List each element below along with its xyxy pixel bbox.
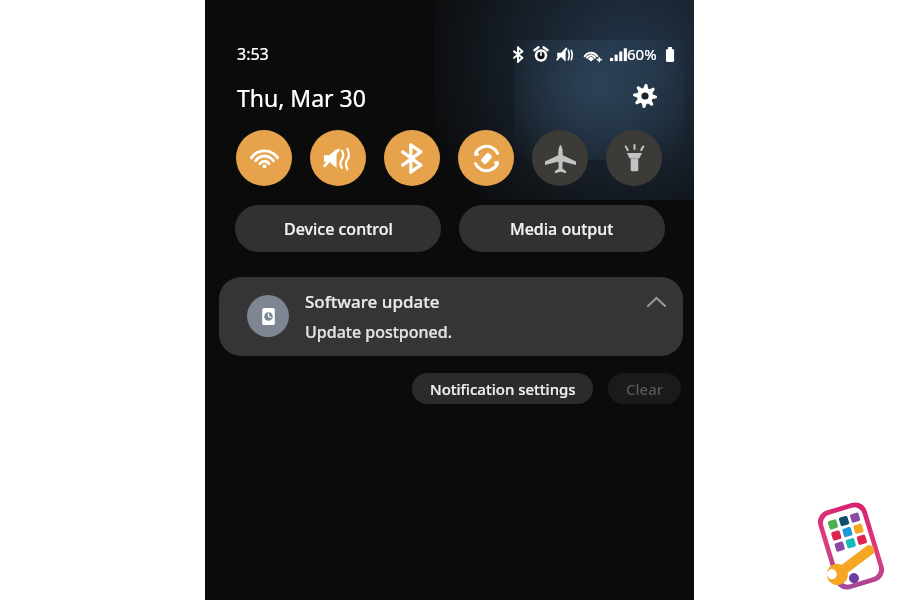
button[interactable]: Media output <box>459 205 665 252</box>
staticText: Update postponed. <box>305 321 453 343</box>
button[interactable]: Software update <box>219 277 683 356</box>
staticText: Media output <box>510 218 614 240</box>
button[interactable]: Wi-Fi <box>236 130 292 186</box>
staticText: Notification settings <box>430 379 576 399</box>
button[interactable]: Bluetooth <box>384 130 440 186</box>
button[interactable]: Settings <box>625 76 665 116</box>
staticText: 60% <box>627 44 657 64</box>
staticText: Thu, Mar 30 <box>237 82 366 113</box>
button[interactable]: Auto rotate <box>458 130 514 186</box>
staticText: Clear <box>626 379 664 399</box>
button[interactable]: Notification settings <box>412 373 593 404</box>
button[interactable]: Clear <box>608 373 681 404</box>
button[interactable]: Device control <box>235 205 441 252</box>
button[interactable]: Flashlight <box>606 130 662 186</box>
staticText: Software update <box>305 290 440 313</box>
button[interactable]: Mute <box>310 130 366 186</box>
staticText: 3:53 <box>237 43 269 65</box>
staticText: Device control <box>284 218 393 240</box>
button[interactable]: Collapse <box>637 283 675 321</box>
button[interactable]: Airplane mode <box>532 130 588 186</box>
